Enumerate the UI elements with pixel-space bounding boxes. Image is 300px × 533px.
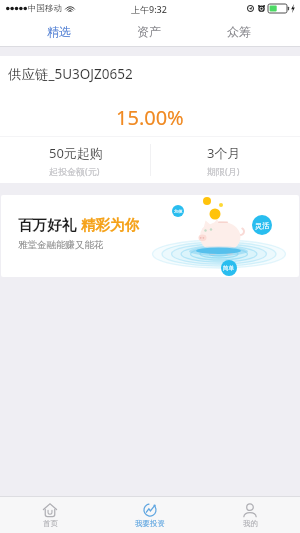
button[interactable]: 我要投资 xyxy=(100,497,200,533)
staticText: 灵活 xyxy=(255,221,269,230)
button[interactable]: 众筹 xyxy=(194,17,284,46)
staticText: 资产 xyxy=(137,24,161,39)
button[interactable]: 精选 xyxy=(14,17,104,46)
staticText: 精选 xyxy=(47,24,71,39)
button[interactable]: 首页 xyxy=(0,497,100,533)
staticText: 上午9:32 xyxy=(131,3,167,15)
staticText: 雅堂金融能赚又能花 xyxy=(18,239,104,251)
staticText: 百万好礼 xyxy=(18,216,76,234)
staticText: 中国移动 xyxy=(28,3,62,14)
staticText: 方便 xyxy=(174,209,183,214)
staticText: 简单 xyxy=(223,265,235,272)
button[interactable]: 资产 xyxy=(104,17,194,46)
staticText: 我要投资 xyxy=(135,519,165,528)
staticText: 起投金额(元) xyxy=(49,165,100,177)
staticText: 精彩为你 xyxy=(81,216,139,234)
button[interactable]: 我的 xyxy=(200,497,300,533)
staticText: 供应链_5U3OJZ0652 xyxy=(8,65,133,83)
button[interactable]: 方便 xyxy=(1,195,299,277)
staticText: 首页 xyxy=(43,519,58,528)
button[interactable]: 供应链_5U3OJZ0652 xyxy=(0,56,300,183)
staticText: 15.00% xyxy=(116,104,184,131)
staticText: 期限(月) xyxy=(207,165,240,177)
staticText: 我的 xyxy=(243,519,258,528)
staticText: 3个月 xyxy=(207,144,241,162)
staticText: 众筹 xyxy=(227,24,251,39)
staticText: 50元起购 xyxy=(49,144,103,162)
